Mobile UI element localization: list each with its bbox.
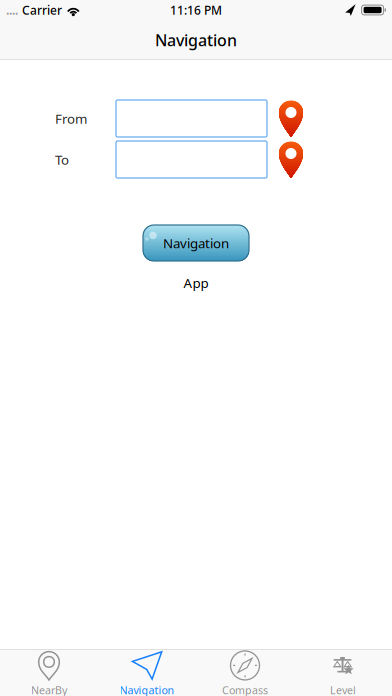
staticText: Navigation [119, 683, 174, 696]
button[interactable]: Navigation [143, 225, 249, 261]
staticText: Carrier [22, 2, 62, 18]
staticText: From [55, 110, 87, 127]
staticText: To [55, 151, 69, 168]
staticText: 11:16 PM [170, 2, 222, 18]
staticText: Navigation [155, 29, 237, 51]
staticText: NearBy [31, 683, 67, 696]
staticText: Compass [222, 683, 268, 696]
button[interactable]: NearBy [0, 649, 98, 696]
staticText: App [183, 274, 208, 292]
staticText: .... [6, 2, 18, 18]
button[interactable]: Level [294, 649, 392, 696]
button[interactable]: Navigation [98, 649, 196, 696]
staticText: Navigation [163, 234, 229, 252]
staticText: Level [330, 683, 356, 696]
button[interactable]: Compass [196, 649, 294, 696]
